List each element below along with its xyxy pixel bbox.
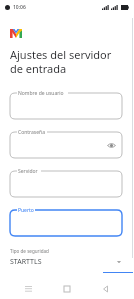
button[interactable]: Tipo de seguridad: [10, 247, 122, 268]
button[interactable]: Contraseña: [10, 128, 122, 158]
staticText: Servidor: [18, 168, 38, 175]
staticText: Puerto: [18, 207, 34, 214]
button[interactable]: Recientes: [17, 279, 39, 299]
button[interactable]: Servidor: [10, 167, 122, 197]
button[interactable]: Mostrar contraseña: [106, 140, 116, 150]
staticText: Tipo de seguridad: [10, 248, 49, 254]
staticText: Ajustes del servidor de entrada: [10, 47, 122, 76]
button[interactable]: Nombre de usuario: [10, 89, 122, 119]
button[interactable]: Inicio: [56, 279, 78, 299]
button[interactable]: Puerto: [10, 206, 122, 236]
staticText: 10:06: [13, 4, 26, 11]
staticText: Nombre de usuario: [18, 90, 64, 97]
staticText: Contraseña: [18, 129, 45, 136]
staticText: STARTTLS: [10, 257, 116, 267]
button[interactable]: Atrás: [95, 279, 117, 299]
